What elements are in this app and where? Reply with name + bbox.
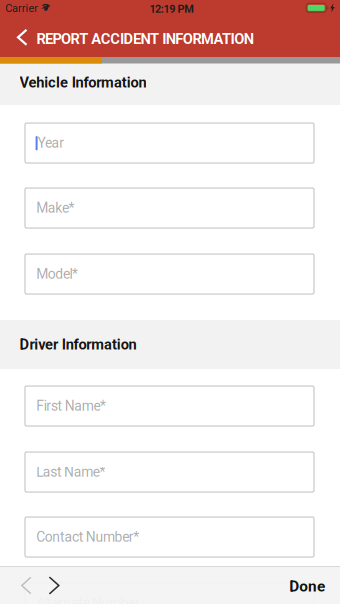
staticText: First Name* <box>36 398 106 414</box>
staticText: Year <box>37 135 64 151</box>
button[interactable]: Make* <box>25 188 314 228</box>
staticText: REPORT ACCIDENT INFORMATION <box>36 30 254 47</box>
staticText: 12:19 PM <box>149 3 194 15</box>
staticText: Contact Number* <box>36 529 139 545</box>
staticText: Last Name* <box>36 464 105 480</box>
button[interactable]: Contact Number* <box>25 517 314 557</box>
button[interactable]: Last Name* <box>25 452 314 492</box>
button[interactable]: Done <box>289 577 325 595</box>
button[interactable]: Model* <box>25 254 314 294</box>
button[interactable]: Back <box>0 20 37 57</box>
staticText: Model* <box>36 266 78 282</box>
button[interactable]: Next field <box>44 566 72 604</box>
button[interactable]: Year <box>25 123 314 163</box>
staticText: Driver Information <box>20 336 137 353</box>
staticText: Done <box>289 577 325 595</box>
button[interactable]: Alternate Number <box>25 583 314 604</box>
staticText: Vehicle Information <box>20 74 146 91</box>
staticText: Carrier <box>5 2 38 15</box>
button[interactable]: First Name* <box>25 386 314 426</box>
button[interactable]: Previous field <box>0 566 44 604</box>
staticText: Make* <box>36 200 74 216</box>
